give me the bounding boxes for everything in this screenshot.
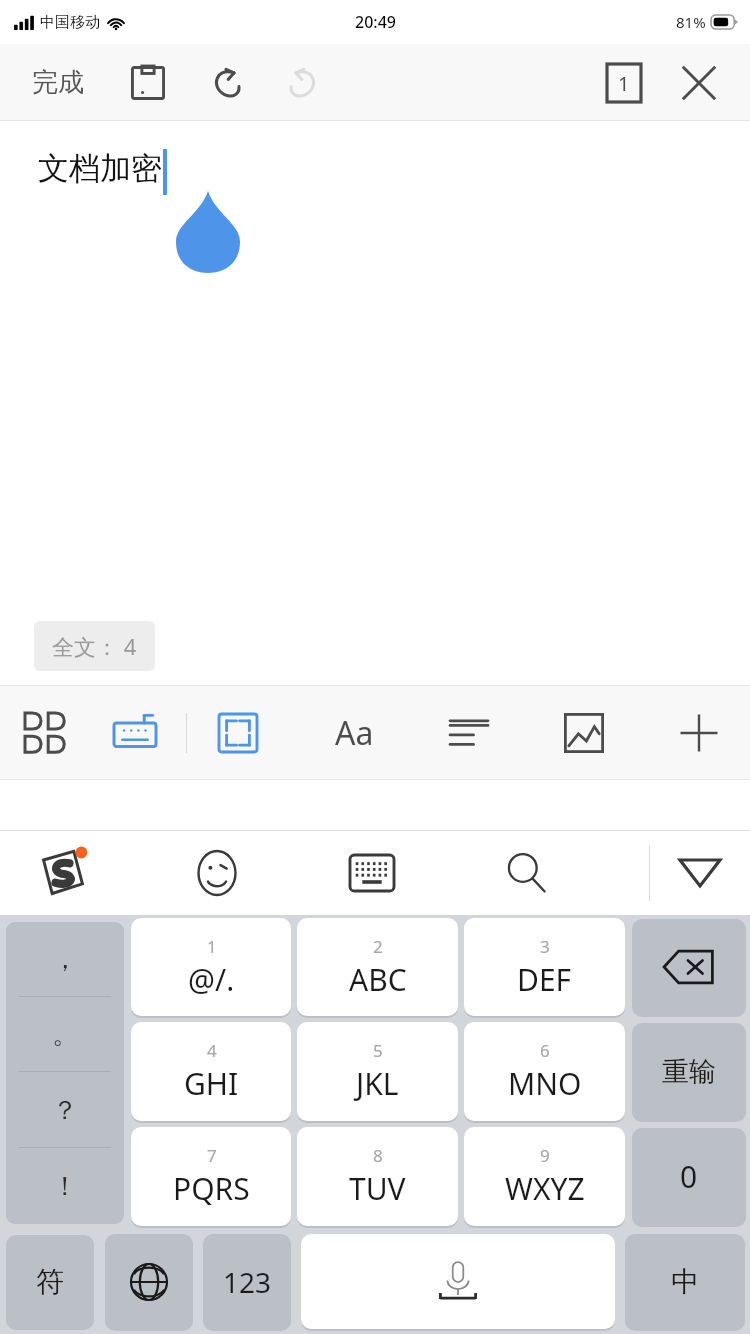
button[interactable]: Keyboard layout <box>339 840 405 906</box>
staticText: 4 <box>207 1039 217 1062</box>
staticText: 0 <box>680 1156 698 1197</box>
button[interactable]: Sogou <box>30 840 96 906</box>
staticText: 2 <box>373 935 383 958</box>
button[interactable]: Add <box>668 702 730 764</box>
staticText: DEF <box>517 959 572 1000</box>
button[interactable]: 中 <box>625 1234 745 1329</box>
button[interactable]: 。 <box>6 997 124 1072</box>
button[interactable]: Align <box>438 702 500 764</box>
button[interactable]: 重输 <box>632 1023 746 1120</box>
button[interactable]: Hide keyboard <box>650 830 750 915</box>
staticText: 81% <box>676 12 706 32</box>
button[interactable]: ！ <box>6 1148 124 1224</box>
button[interactable]: Fullscreen <box>207 702 269 764</box>
button[interactable]: 全文： 4 <box>34 621 155 671</box>
button[interactable]: 8 <box>297 1127 458 1226</box>
staticText: 文档加密 <box>38 149 162 188</box>
button[interactable]: Search <box>494 840 560 906</box>
button[interactable]: Delete <box>632 919 746 1015</box>
button[interactable]: 0 <box>632 1128 746 1225</box>
button[interactable]: 3 <box>464 918 625 1016</box>
button[interactable]: Close <box>670 54 728 112</box>
button[interactable]: Emoji <box>184 840 250 906</box>
staticText: MNO <box>508 1063 582 1104</box>
staticText: WXYZ <box>505 1168 585 1209</box>
staticText: ？ <box>52 1094 78 1127</box>
button[interactable]: 6 <box>464 1022 625 1121</box>
button[interactable]: Save <box>122 57 174 109</box>
staticText: 1 <box>618 70 630 97</box>
button[interactable]: Image <box>553 702 615 764</box>
staticText: 中 <box>671 1264 699 1299</box>
staticText: GHI <box>184 1063 239 1104</box>
staticText: 5 <box>373 1039 383 1062</box>
button[interactable]: Language <box>105 1234 193 1329</box>
staticText: PQRS <box>173 1168 250 1209</box>
staticText: 符 <box>36 1264 64 1299</box>
button[interactable]: ， <box>6 922 124 997</box>
staticText: 中国移动 <box>40 13 100 32</box>
button[interactable]: 符 <box>6 1235 94 1328</box>
staticText: 8 <box>373 1144 383 1167</box>
staticText: 9 <box>540 1144 550 1167</box>
button[interactable]: 1 <box>131 918 291 1016</box>
button[interactable]: 5 <box>297 1022 458 1121</box>
button[interactable]: Undo <box>200 57 252 109</box>
staticText: 20:49 <box>355 11 396 33</box>
staticText: 6 <box>540 1039 550 1062</box>
staticText: Aa <box>335 711 374 755</box>
button[interactable]: Redo <box>278 57 330 109</box>
button[interactable]: ？ <box>6 1072 124 1148</box>
staticText: 。 <box>52 1018 78 1051</box>
button[interactable]: Apps <box>14 702 76 764</box>
button[interactable]: 4 <box>131 1022 291 1121</box>
staticText: 123 <box>223 1263 272 1301</box>
staticText: ABC <box>349 959 407 1000</box>
staticText: 完成 <box>32 66 84 99</box>
button[interactable]: 123 <box>203 1234 291 1329</box>
button[interactable]: 9 <box>464 1127 625 1226</box>
staticText: TUV <box>349 1168 406 1209</box>
staticText: ， <box>52 943 78 976</box>
button[interactable]: 7 <box>131 1127 291 1226</box>
button[interactable]: Keyboard <box>104 702 166 764</box>
staticText: 重输 <box>662 1055 716 1089</box>
staticText: @/. <box>188 959 235 1000</box>
button[interactable]: Space / voice input <box>301 1234 615 1329</box>
staticText: 7 <box>207 1144 217 1167</box>
button[interactable]: 2 <box>297 918 458 1016</box>
staticText: 全文： 4 <box>52 631 137 661</box>
staticText: 1 <box>207 935 217 958</box>
staticText: JKL <box>356 1063 399 1104</box>
button[interactable]: Pages <box>596 55 652 111</box>
staticText: 3 <box>540 935 550 958</box>
staticText: ！ <box>52 1170 78 1203</box>
button[interactable]: Font <box>323 702 385 764</box>
button[interactable]: 完成 <box>26 60 90 105</box>
